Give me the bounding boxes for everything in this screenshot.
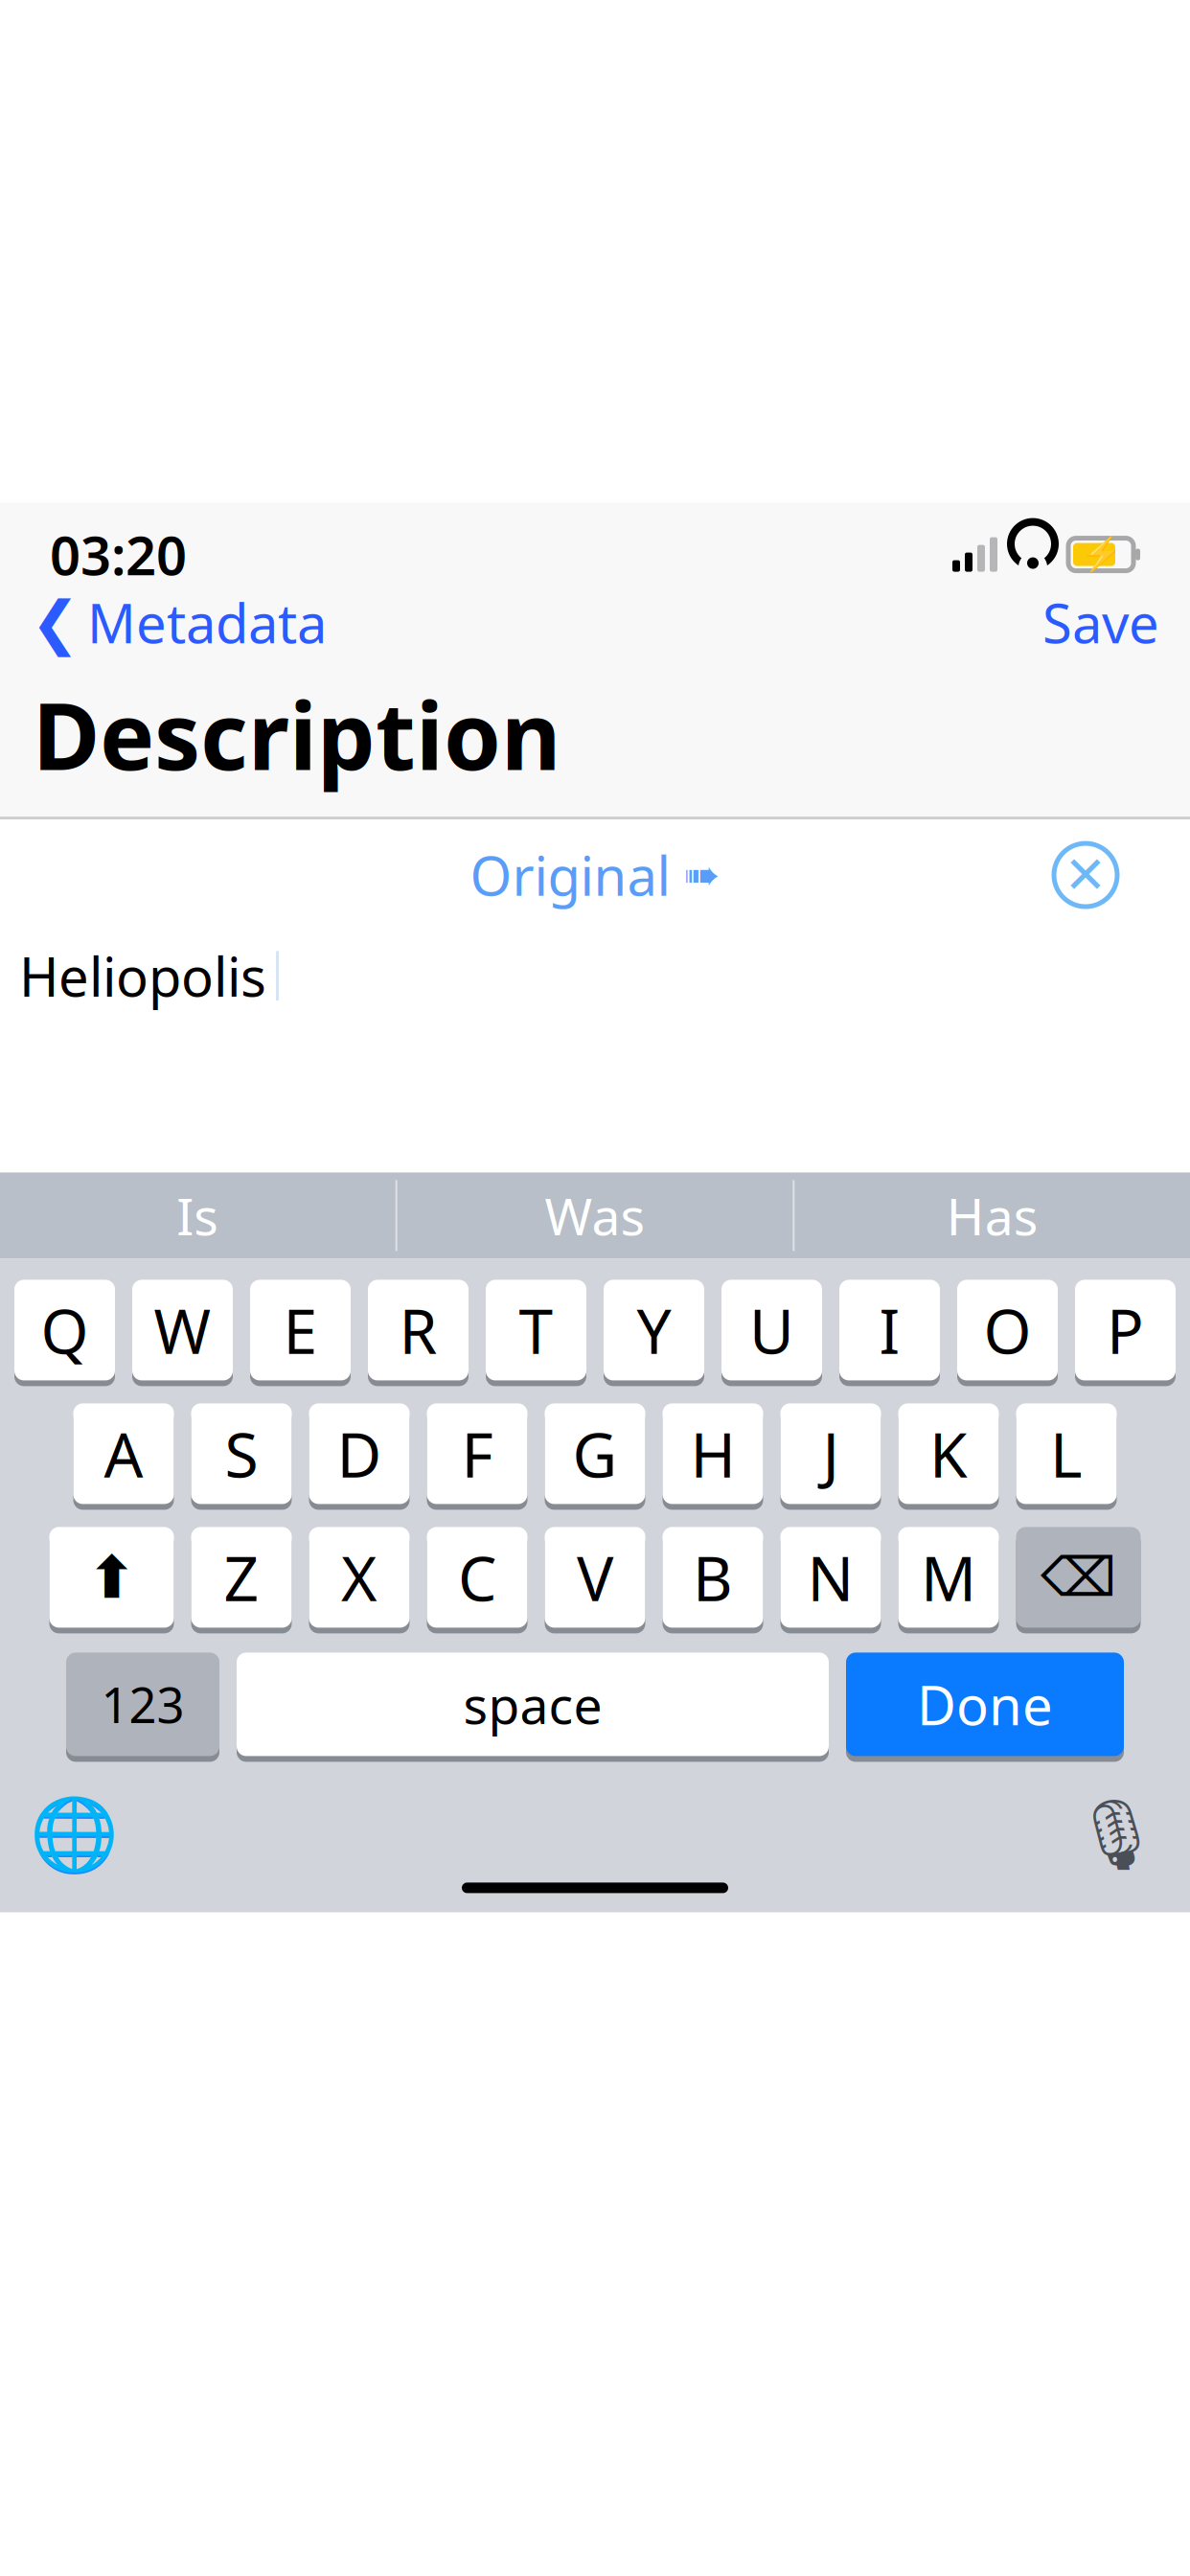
staticText: Q — [41, 1289, 89, 1371]
staticText: N — [807, 1537, 854, 1618]
button[interactable]: Is — [0, 1172, 395, 1259]
staticText: 🎙 — [1073, 1795, 1160, 1874]
button[interactable]: Has — [795, 1172, 1190, 1259]
staticText: K — [929, 1413, 968, 1494]
button[interactable]: B — [663, 1527, 763, 1633]
staticText: Done — [917, 1669, 1053, 1740]
staticText: G — [572, 1413, 618, 1494]
staticText: 03:20 — [50, 519, 187, 590]
staticText: D — [337, 1413, 382, 1494]
button[interactable]: T — [486, 1280, 586, 1386]
button[interactable]: P — [1075, 1280, 1176, 1386]
staticText: Z — [224, 1537, 259, 1618]
staticText: W — [154, 1289, 211, 1371]
button[interactable]: S — [191, 1403, 292, 1510]
button[interactable]: C — [427, 1527, 527, 1633]
button[interactable]: Q — [14, 1280, 115, 1386]
button[interactable]: K — [898, 1403, 999, 1510]
staticText: Has — [946, 1182, 1038, 1249]
button[interactable]: H — [663, 1403, 763, 1510]
button[interactable]: Shift — [49, 1527, 174, 1633]
button[interactable]: I — [839, 1280, 940, 1386]
button[interactable]: U — [721, 1280, 822, 1386]
button[interactable]: R — [368, 1280, 469, 1386]
staticText: Description — [33, 673, 561, 796]
button[interactable]: F — [427, 1403, 527, 1510]
button[interactable]: D — [309, 1403, 410, 1510]
staticText: ✕ — [1064, 846, 1107, 904]
button[interactable]: J — [780, 1403, 881, 1510]
staticText: M — [921, 1537, 976, 1618]
staticText: 🌐 — [29, 1794, 118, 1876]
button[interactable]: N — [780, 1527, 881, 1633]
staticText: U — [749, 1289, 794, 1371]
staticText: Was — [545, 1182, 645, 1249]
staticText: X — [341, 1537, 378, 1618]
button[interactable]: Save — [1037, 577, 1165, 668]
staticText: Save — [1042, 587, 1159, 658]
staticText: ❮ — [31, 589, 80, 656]
staticText: Is — [177, 1182, 219, 1249]
staticText: C — [458, 1537, 496, 1618]
staticText: Original — [470, 839, 670, 911]
staticText: L — [1050, 1413, 1083, 1494]
button[interactable]: E — [250, 1280, 351, 1386]
button[interactable]: A — [73, 1403, 174, 1510]
staticText: V — [577, 1537, 613, 1618]
staticText: Heliopolis — [19, 940, 266, 1012]
staticText: O — [984, 1289, 1031, 1371]
button[interactable]: ❮ — [25, 577, 332, 668]
button[interactable]: L — [1016, 1403, 1117, 1510]
staticText: ⚡ — [1080, 536, 1121, 573]
staticText: E — [283, 1289, 318, 1371]
staticText: I — [879, 1289, 900, 1371]
button[interactable]: Y — [604, 1280, 704, 1386]
button[interactable]: Clear text — [1042, 832, 1129, 918]
staticText: B — [693, 1537, 733, 1618]
staticText: Metadata — [87, 587, 327, 658]
staticText: S — [225, 1413, 258, 1494]
staticText: P — [1107, 1289, 1144, 1371]
staticText: F — [461, 1413, 493, 1494]
staticText: ➠ — [684, 850, 720, 900]
button[interactable]: Delete — [1016, 1527, 1141, 1633]
button[interactable]: V — [545, 1527, 645, 1633]
button[interactable]: W — [132, 1280, 233, 1386]
button[interactable]: Next keyboard — [21, 1787, 126, 1883]
staticText: T — [519, 1289, 553, 1371]
button[interactable]: Numbers — [66, 1653, 219, 1762]
button[interactable]: X — [309, 1527, 410, 1633]
staticText: ⬆ — [87, 1544, 136, 1611]
staticText: R — [399, 1289, 437, 1371]
staticText: A — [104, 1413, 143, 1494]
staticText: ⌫ — [1041, 1547, 1116, 1608]
button[interactable]: Was — [397, 1172, 793, 1259]
staticText: space — [463, 1670, 602, 1738]
button[interactable]: G — [545, 1403, 645, 1510]
staticText: H — [690, 1413, 735, 1494]
button[interactable]: M — [898, 1527, 999, 1633]
staticText: Y — [637, 1289, 671, 1371]
staticText: J — [823, 1413, 839, 1494]
button[interactable]: Original — [457, 830, 733, 920]
staticText: 123 — [101, 1672, 184, 1737]
button[interactable]: Z — [191, 1527, 292, 1633]
button[interactable]: Dictation — [1064, 1787, 1169, 1883]
button[interactable]: space — [237, 1653, 829, 1762]
button[interactable]: O — [957, 1280, 1058, 1386]
button[interactable]: Done — [846, 1653, 1124, 1762]
